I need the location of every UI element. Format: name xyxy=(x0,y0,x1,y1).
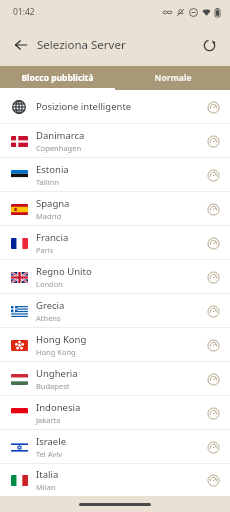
staticText: Spagna xyxy=(36,197,70,210)
button[interactable]: Refresh xyxy=(196,32,222,58)
staticText: Jakarta xyxy=(36,415,61,425)
staticText: Tel Aviv xyxy=(36,449,63,459)
button[interactable]: Indonesia xyxy=(0,396,230,429)
staticText: Hong Kong xyxy=(36,347,76,357)
staticText: Israele xyxy=(36,435,67,448)
staticText: Blocco pubblicità xyxy=(21,72,94,84)
staticText: Athens xyxy=(36,313,61,323)
staticText: Normale xyxy=(154,72,192,84)
button[interactable]: Normale xyxy=(115,66,230,90)
button[interactable]: Spagna xyxy=(0,192,230,225)
staticText: Copenhagen xyxy=(36,143,82,153)
staticText: Grecia xyxy=(36,299,65,312)
staticText: Paris xyxy=(36,245,54,255)
button[interactable]: Test speed xyxy=(200,467,226,493)
button[interactable]: Italia xyxy=(0,464,230,496)
staticText: Milan xyxy=(36,482,56,492)
button[interactable]: Blocco pubblicità xyxy=(0,66,115,90)
staticText: Regno Unito xyxy=(36,265,92,278)
button[interactable]: Hong Kong xyxy=(0,328,230,361)
staticText: Budapest xyxy=(36,381,70,391)
button[interactable]: Test speed xyxy=(200,298,226,324)
button[interactable]: Test speed xyxy=(200,128,226,154)
button[interactable]: Test speed xyxy=(200,162,226,188)
staticText: 01:42 xyxy=(13,6,35,18)
button[interactable]: Israele xyxy=(0,430,230,463)
staticText: Estonia xyxy=(36,163,69,176)
staticText: Madrid xyxy=(36,211,62,221)
button[interactable]: Test speed xyxy=(200,94,226,120)
button[interactable]: Test speed xyxy=(200,230,226,256)
button[interactable]: Grecia xyxy=(0,294,230,327)
button[interactable]: Francia xyxy=(0,226,230,259)
button[interactable]: Test speed xyxy=(200,196,226,222)
button[interactable]: Test speed xyxy=(200,332,226,358)
staticText: Posizione intelligente xyxy=(36,100,132,113)
staticText: Italia xyxy=(36,468,59,481)
staticText: Ungheria xyxy=(36,367,78,380)
button[interactable]: Test speed xyxy=(200,434,226,460)
button[interactable]: Test speed xyxy=(200,264,226,290)
button[interactable]: Ungheria xyxy=(0,362,230,395)
button[interactable]: Back xyxy=(8,32,34,58)
staticText: London xyxy=(36,279,63,289)
button[interactable]: Estonia xyxy=(0,158,230,191)
staticText: Hong Kong xyxy=(36,333,87,346)
button[interactable]: Test speed xyxy=(200,366,226,392)
button[interactable]: Regno Unito xyxy=(0,260,230,293)
staticText: Francia xyxy=(36,231,69,244)
button[interactable]: Posizione intelligente xyxy=(0,90,230,123)
button[interactable]: Danimarca xyxy=(0,124,230,157)
button[interactable]: Test speed xyxy=(200,400,226,426)
staticText: Seleziona Server xyxy=(37,37,126,53)
staticText: Tallinn xyxy=(36,177,59,187)
staticText: Indonesia xyxy=(36,401,81,414)
staticText: Danimarca xyxy=(36,129,85,142)
